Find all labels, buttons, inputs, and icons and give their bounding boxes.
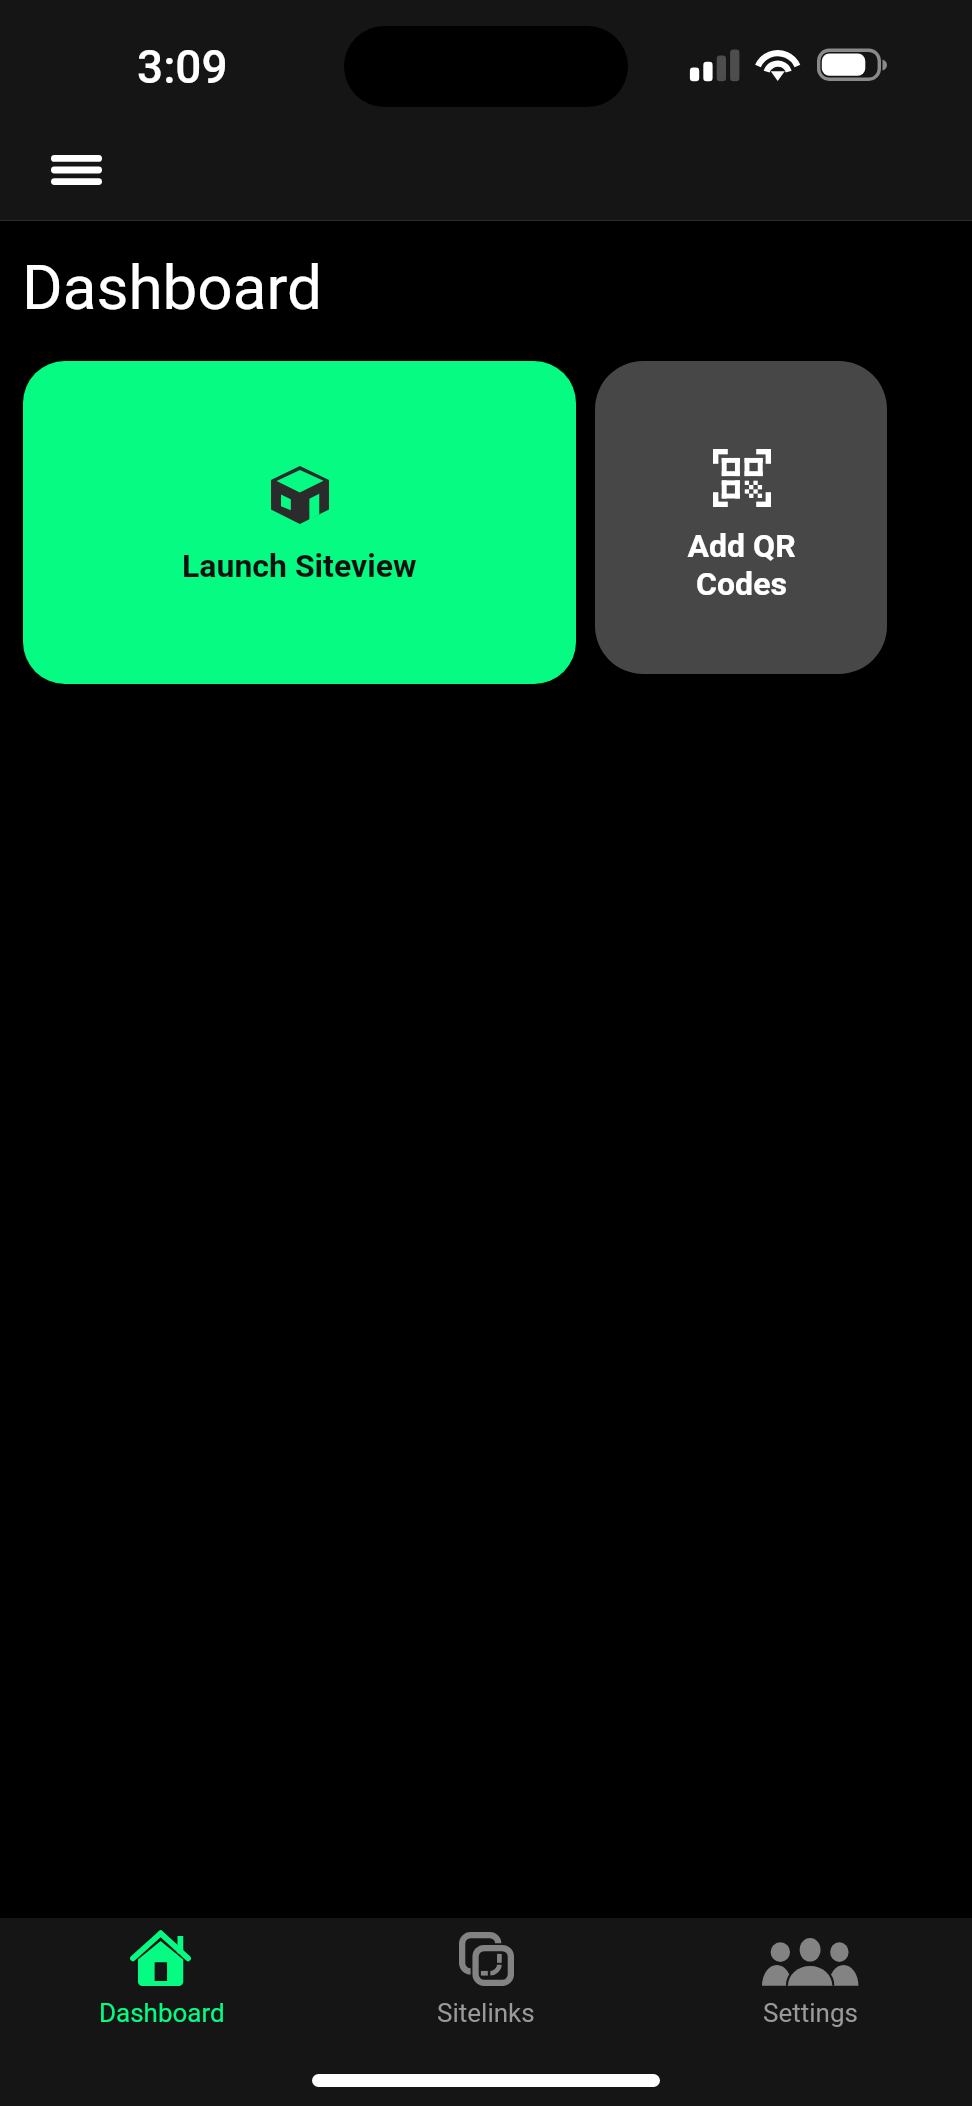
staticText: Settings [763,1998,858,2028]
staticText: Sitelinks [437,1998,535,2028]
button[interactable]: Sitelinks [324,1918,648,2046]
staticText: Dashboard [99,1998,225,2028]
staticText: 3:09 [137,40,228,94]
button[interactable]: Settings [648,1918,972,2046]
button[interactable]: Dashboard [0,1918,324,2046]
button[interactable]: Add QR Codes [595,361,887,674]
staticText: Dashboard [22,251,322,324]
staticText: Add QR Codes [687,527,796,603]
staticText: Launch Siteview [182,547,417,585]
button[interactable]: Launch Siteview [23,361,576,684]
button[interactable]: Open navigation menu [26,126,126,214]
